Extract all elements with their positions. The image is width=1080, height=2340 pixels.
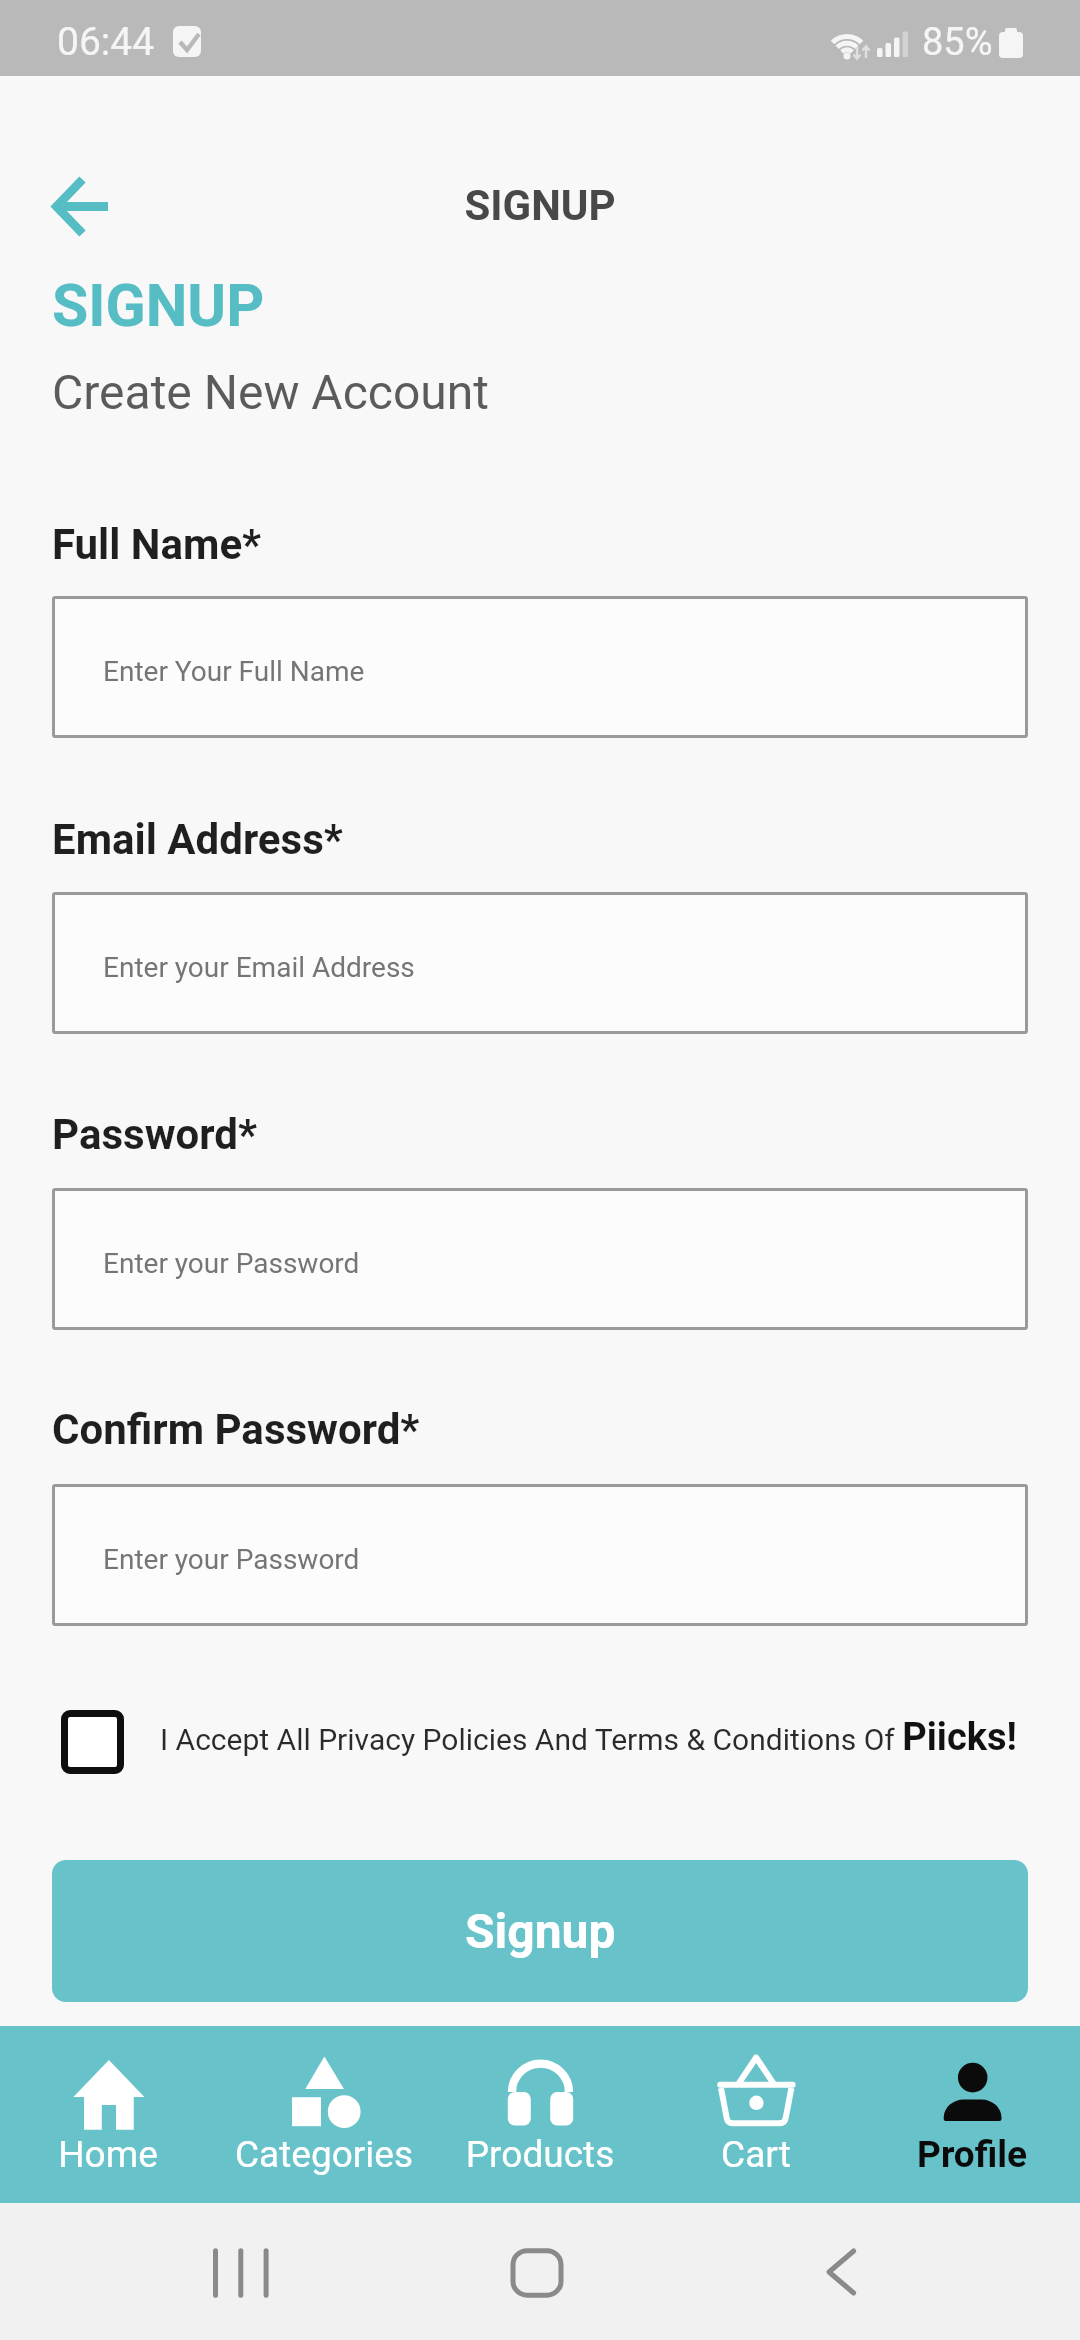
staticText: Home [0, 2133, 216, 2176]
staticText: I Accept All Privacy Policies And Terms … [160, 1715, 1017, 1760]
staticText: Password* [52, 1110, 257, 1159]
staticText: Categories [216, 2133, 432, 2176]
staticText: Products [432, 2133, 648, 2176]
button[interactable] [52, 892, 1028, 1034]
staticText: Email Address* [52, 815, 343, 864]
button[interactable] [864, 2026, 1080, 2203]
staticText: 06:44 [57, 19, 155, 65]
staticText: SIGNUP [0, 181, 1080, 230]
button[interactable] [52, 1188, 1028, 1330]
staticText: SIGNUP [52, 271, 265, 340]
staticText: Enter your Password [103, 1543, 360, 1576]
staticText: Confirm Password* [52, 1405, 420, 1454]
staticText: Signup [465, 1903, 616, 1959]
button[interactable] [648, 2026, 864, 2203]
staticText: Create New Account [52, 364, 489, 420]
staticText: Enter Your Full Name [103, 655, 365, 688]
button[interactable] [52, 1484, 1028, 1626]
button[interactable] [61, 1710, 124, 1774]
button[interactable] [216, 2026, 432, 2203]
staticText: Full Name* [52, 520, 262, 569]
button[interactable]: Signup [52, 1860, 1028, 2002]
staticText: Cart [648, 2133, 864, 2176]
staticText: Enter your Password [103, 1247, 360, 1280]
staticText: Enter your Email Address [103, 951, 415, 984]
button[interactable] [52, 596, 1028, 738]
staticText: Profile [864, 2133, 1080, 2176]
staticText: 85% [922, 20, 993, 65]
button[interactable] [0, 2026, 216, 2203]
button[interactable] [432, 2026, 648, 2203]
button[interactable] [40, 168, 130, 248]
